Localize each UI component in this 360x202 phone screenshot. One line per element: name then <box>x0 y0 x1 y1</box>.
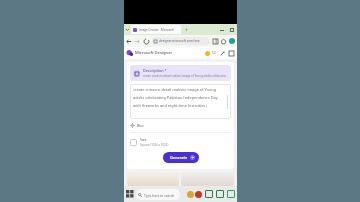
button[interactable]: Pinned app <box>195 191 202 198</box>
button[interactable]: Size <box>130 137 231 147</box>
button[interactable]: Description * <box>133 68 228 78</box>
button[interactable]: Taskbar app <box>216 190 224 198</box>
staticText: create a macro detail realistic image of… <box>143 74 228 78</box>
button[interactable]: New tab <box>183 27 189 33</box>
button[interactable]: Create <box>220 51 225 56</box>
button[interactable]: Collections <box>213 39 218 44</box>
button[interactable]: Menu <box>229 51 234 56</box>
button[interactable]: Back <box>126 39 131 44</box>
staticText: + <box>185 27 188 33</box>
staticText: 50 <box>212 51 216 55</box>
staticText: Description * <box>143 68 167 73</box>
staticText: Microsoft Designer <box>135 50 173 56</box>
staticText: Size <box>140 137 147 142</box>
button[interactable]: Add favorite <box>221 39 226 44</box>
button[interactable]: Credits <box>205 51 210 56</box>
button[interactable]: Minimize <box>219 27 225 33</box>
staticText: designer.microsoft.com/ima <box>159 39 200 43</box>
staticText: with fireworks and night-time festivitie… <box>133 103 208 108</box>
button[interactable]: Type here to search <box>138 189 178 200</box>
staticText: adults celebrating Pakistan Independence… <box>133 95 218 100</box>
button[interactable]: Start <box>126 190 134 198</box>
staticText: Type here to search <box>144 193 175 197</box>
button[interactable]: Taskbar app <box>227 190 235 198</box>
button[interactable]: designer.microsoft.com/ima <box>154 37 208 45</box>
button[interactable]: Generate <box>170 155 195 160</box>
staticText: Image Creator - Microsoft Desi <box>139 28 179 32</box>
button[interactable]: Pinned app <box>187 191 194 198</box>
button[interactable]: Image Creator - Microsoft Desi <box>133 25 179 34</box>
button[interactable]: Blur <box>130 123 231 128</box>
button[interactable]: Profile <box>229 38 235 44</box>
staticText: Square (1024 x 1024) <box>140 143 169 147</box>
button[interactable]: create a macro detail realistic image of… <box>133 87 228 116</box>
button[interactable]: Taskbar app <box>205 190 213 198</box>
button[interactable]: Tab actions <box>125 27 130 32</box>
staticText: Generate <box>170 155 188 160</box>
staticText: Blur <box>137 123 144 128</box>
button[interactable]: Forward <box>135 39 140 44</box>
staticText: create a macro detail realistic image of… <box>133 87 217 92</box>
button[interactable]: Maximize <box>229 27 235 33</box>
button[interactable]: Reload <box>144 39 149 44</box>
